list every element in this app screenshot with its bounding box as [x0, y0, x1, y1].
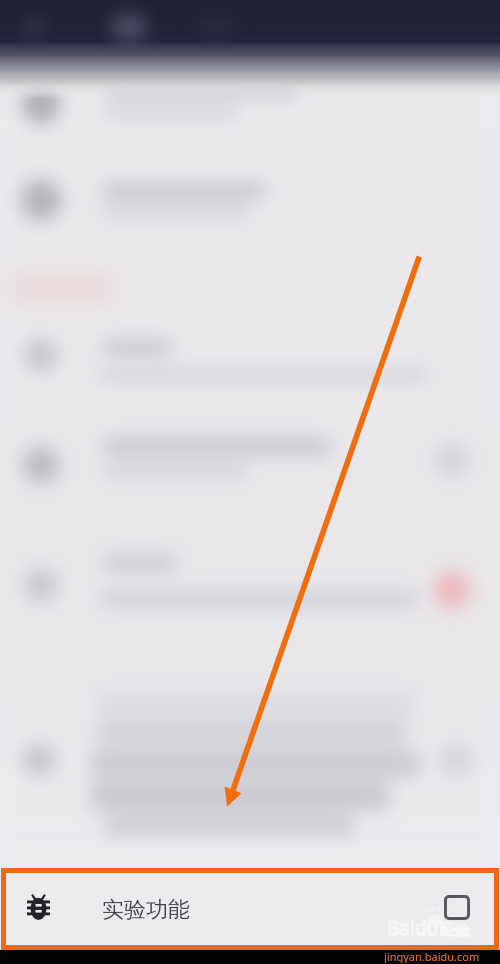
staticText: Baidu [387, 915, 439, 941]
button[interactable]: Enable experimental features [444, 895, 470, 920]
staticText: 经验 [440, 921, 470, 940]
staticText: 实验功能 [102, 896, 190, 924]
button[interactable]: Baidu [6, 873, 494, 945]
staticText: jingyan.baidu.com [384, 949, 480, 963]
